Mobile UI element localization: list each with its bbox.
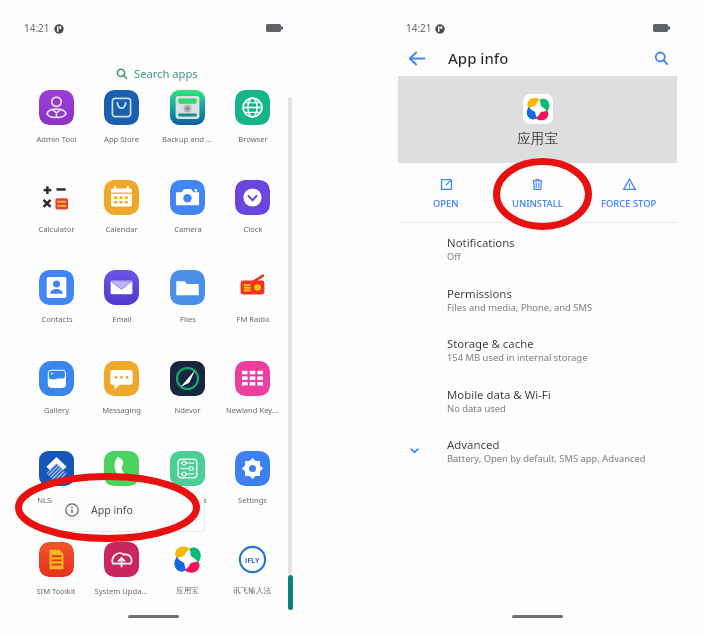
button[interactable]: UNINSTALL	[492, 172, 582, 214]
staticText: Browser	[238, 134, 268, 144]
staticText: OPEN	[433, 197, 459, 210]
button[interactable]: Clock	[220, 180, 284, 234]
button[interactable]: SIM Toolkit	[24, 542, 88, 596]
staticText: Messaging	[102, 405, 141, 415]
staticText: System Upda...	[94, 586, 148, 596]
staticText: NLSettings	[168, 495, 207, 505]
staticText: Calculator	[38, 224, 75, 234]
staticText: Camera	[174, 224, 202, 234]
button[interactable]: Permissions	[398, 286, 677, 330]
button[interactable]: OPEN	[401, 172, 491, 214]
button[interactable]: Contacts	[24, 270, 88, 324]
staticText: Contacts	[41, 314, 73, 324]
button[interactable]: Mobile data & Wi-Fi	[398, 387, 677, 431]
button[interactable]: Messaging	[89, 361, 153, 415]
button[interactable]: Backup and ...	[155, 90, 219, 144]
button[interactable]: Calculator	[24, 180, 88, 234]
button[interactable]: FM Radio	[220, 270, 284, 324]
button[interactable]: Notifications	[398, 235, 677, 279]
button[interactable]: Settings	[220, 451, 284, 505]
button[interactable]: App info	[52, 492, 204, 531]
staticText: 讯飞输入法	[233, 586, 271, 596]
staticText: iFLY	[245, 555, 260, 565]
button[interactable]: NLSettings	[155, 451, 219, 505]
staticText: Battery, Open by default, SMS app, Advan…	[447, 452, 646, 465]
staticText: App info	[448, 48, 509, 68]
button[interactable]: iFLY	[220, 542, 284, 596]
staticText: UNINSTALL	[512, 197, 563, 210]
staticText: Settings	[238, 495, 267, 505]
staticText: 应用宝	[517, 130, 558, 147]
button[interactable]: Newland Key...	[220, 361, 284, 415]
staticText: SIM Toolkit	[36, 586, 76, 596]
button[interactable]: Ndevor	[155, 361, 219, 415]
button[interactable]: Browser	[220, 90, 284, 144]
staticText: 14:21	[406, 21, 432, 35]
staticText: App Store	[104, 134, 139, 144]
button[interactable]: Admin Tool	[24, 90, 88, 144]
button[interactable]: Advanced	[398, 437, 677, 481]
button[interactable]: Camera	[155, 180, 219, 234]
button[interactable]: Email	[89, 270, 153, 324]
staticText: NLScanner	[37, 495, 76, 505]
staticText: App info	[91, 503, 133, 517]
staticText: FM Radio	[236, 314, 270, 324]
staticText: Admin Tool	[36, 134, 77, 144]
staticText: 154 MB used in internal storage	[447, 351, 588, 364]
button[interactable]: System Upda...	[89, 542, 153, 596]
button[interactable]: Calendar	[89, 180, 153, 234]
button[interactable]: 应用宝	[155, 542, 219, 596]
staticText: FORCE STOP	[601, 197, 657, 210]
button[interactable]: FORCE STOP	[584, 172, 674, 214]
staticText: Storage & cache	[447, 336, 534, 352]
button[interactable]: Back	[404, 45, 430, 71]
staticText: Newland Key...	[226, 405, 278, 415]
staticText: No data used	[447, 402, 506, 415]
button[interactable]: Gallery	[24, 361, 88, 415]
staticText: Backup and ...	[162, 134, 212, 144]
button[interactable]: Files	[155, 270, 219, 324]
staticText: Files and media, Phone, and SMS	[447, 301, 593, 314]
staticText: 应用宝	[176, 586, 199, 596]
button[interactable]: NLScanner	[24, 451, 88, 505]
staticText: Advanced	[447, 437, 500, 453]
staticText: Off	[447, 250, 461, 263]
staticText: Calendar	[105, 224, 138, 234]
staticText: Clock	[243, 224, 263, 234]
button[interactable]: Storage & cache	[398, 336, 677, 380]
staticText: Mobile data & Wi-Fi	[447, 387, 551, 403]
staticText: Email	[112, 314, 132, 324]
button[interactable]: Phone	[89, 451, 153, 505]
staticText: 14:21	[24, 21, 50, 35]
staticText: Files	[180, 314, 196, 324]
button[interactable]: App Store	[89, 90, 153, 144]
button[interactable]: Search	[648, 45, 674, 71]
staticText: Gallery	[44, 405, 69, 415]
staticText: Search apps	[134, 66, 198, 81]
button[interactable]: Search apps	[31, 59, 282, 87]
staticText: Permissions	[447, 286, 512, 302]
staticText: Notifications	[447, 235, 515, 251]
staticText: Ndevor	[174, 405, 201, 415]
